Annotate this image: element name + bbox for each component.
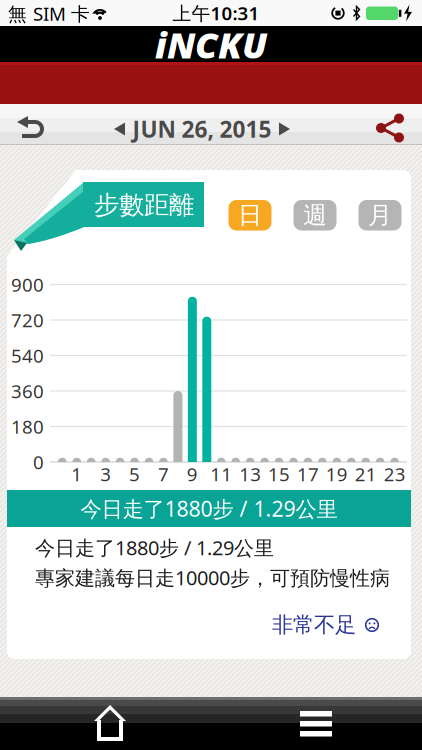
staticText: 23 [384, 462, 406, 486]
staticText: 上午10:31 [172, 1, 259, 25]
button[interactable]: 非常不足 [272, 612, 379, 638]
staticText: 週 [303, 200, 327, 230]
staticText: 180 [11, 414, 44, 439]
staticText: 7 [158, 462, 169, 486]
button[interactable]: Previous day [114, 121, 132, 137]
button[interactable]: 月 [358, 200, 401, 230]
staticText: iNCKU [155, 21, 267, 68]
staticText: 無 SIM 卡 [8, 1, 90, 26]
button[interactable]: Back [17, 116, 44, 139]
button[interactable]: 週 [293, 200, 336, 230]
staticText: 日 [238, 200, 262, 230]
staticText: 0 [33, 450, 44, 474]
staticText: 15 [268, 462, 290, 486]
staticText: 720 [11, 308, 44, 332]
staticText: JUN 26, 2015 [132, 114, 271, 144]
staticText: 19 [326, 462, 348, 486]
staticText: 今日走了1880步 / 1.29公里 [35, 534, 274, 561]
staticText: 540 [11, 343, 44, 368]
staticText: 3 [100, 462, 111, 486]
button[interactable]: Home [92, 703, 128, 745]
staticText: 9 [187, 462, 198, 486]
staticText: 專家建議每日走10000步，可預防慢性病 [35, 564, 390, 591]
staticText: 21 [355, 462, 377, 486]
button[interactable]: JUN 26, 2015 [112, 117, 292, 141]
button[interactable]: 日 [228, 200, 271, 230]
staticText: 今日走了1880步 / 1.29公里 [80, 494, 337, 523]
staticText: 月 [368, 200, 392, 230]
staticText: 1 [71, 462, 82, 486]
staticText: 13 [239, 462, 261, 486]
button[interactable]: Next day [272, 121, 290, 137]
staticText: 5 [129, 462, 140, 486]
staticText: 非常不足 [272, 612, 356, 638]
staticText: 11 [210, 462, 232, 486]
staticText: 900 [11, 272, 44, 297]
button[interactable]: Share [375, 113, 405, 143]
staticText: 步數距離 [94, 189, 194, 220]
staticText: 360 [11, 379, 44, 403]
button[interactable]: Menu [298, 703, 334, 745]
staticText: 17 [297, 462, 319, 486]
